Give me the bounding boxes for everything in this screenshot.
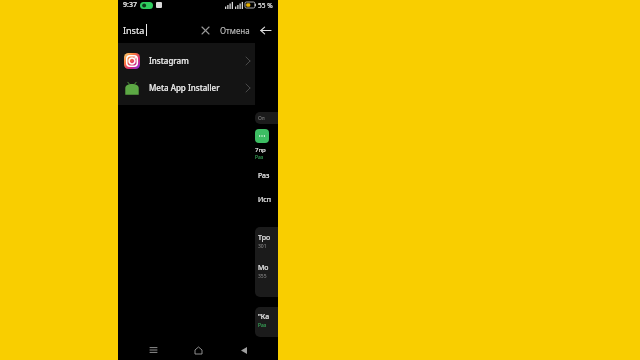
staticText: 301 [258, 243, 267, 250]
button[interactable]: Home [187, 340, 209, 360]
button[interactable]: Meta App Installer [118, 74, 255, 101]
staticText: Ол [258, 115, 265, 122]
button[interactable]: Instagram [118, 47, 255, 74]
staticText: Instagram [149, 55, 246, 66]
staticText: "Ка [258, 312, 270, 322]
staticText: 355 [258, 273, 267, 280]
staticText: Тро [258, 233, 271, 243]
staticText: 7пр [255, 146, 266, 154]
button[interactable]: Back [233, 340, 255, 360]
staticText: Отмена [220, 25, 250, 36]
button[interactable]: Clear search [196, 21, 214, 39]
staticText: 55 % [258, 1, 273, 10]
staticText: 9:37 [123, 0, 137, 10]
staticText: Мо [258, 263, 269, 273]
button[interactable]: Back [256, 21, 274, 39]
staticText: Meta App Installer [149, 82, 246, 93]
button[interactable]: Recent apps [142, 340, 164, 360]
staticText: Раз [258, 322, 267, 329]
button[interactable]: Отмена [217, 22, 253, 39]
staticText: Insta [123, 24, 145, 36]
staticText: Раз [258, 171, 270, 181]
staticText: Исп [258, 195, 271, 205]
staticText: Раз [255, 154, 264, 161]
